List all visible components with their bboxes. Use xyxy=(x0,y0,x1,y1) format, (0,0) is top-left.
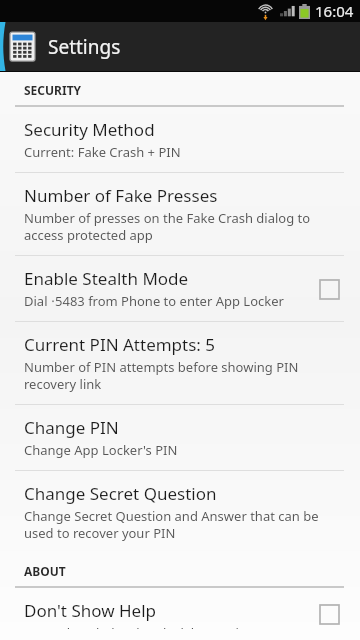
staticText: ABOUT xyxy=(24,563,66,579)
button[interactable]: Number of Fake Presses xyxy=(0,173,360,255)
staticText: Number of PIN attempts before showing PI… xyxy=(24,358,346,393)
staticText: Current PIN Attempts: 5 xyxy=(24,333,216,356)
button[interactable]: Toggle Don't Show Help xyxy=(312,599,346,629)
button[interactable]: Change Secret Question xyxy=(0,471,360,553)
button[interactable]: Security Method xyxy=(0,107,360,172)
staticText: SECURITY xyxy=(24,82,82,98)
button[interactable]: Change PIN xyxy=(0,405,360,470)
staticText: Change Secret Question and Answer that c… xyxy=(24,507,346,542)
button[interactable]: Toggle Enable Stealth Mode xyxy=(312,272,346,306)
staticText: Change App Locker's PIN xyxy=(24,441,178,459)
staticText: Don't Show Help xyxy=(24,599,157,622)
staticText: Change Secret Question xyxy=(24,482,217,505)
button[interactable]: Current PIN Attempts: 5 xyxy=(0,322,360,404)
staticText: Security Method xyxy=(24,118,155,141)
button[interactable]: Don't Show Help xyxy=(0,588,360,640)
staticText: Don’t Show help when lock button is pres… xyxy=(24,624,300,629)
staticText: Enable Stealth Mode xyxy=(24,267,189,290)
staticText: Change PIN xyxy=(24,416,119,439)
staticText: 16:04 xyxy=(315,1,354,21)
staticText: Current: Fake Crash + PIN xyxy=(24,143,181,161)
staticText: Number of presses on the Fake Crash dial… xyxy=(24,209,346,244)
staticText: Dial ⋅5483 from Phone to enter App Locke… xyxy=(24,292,284,310)
button[interactable]: Enable Stealth Mode xyxy=(0,256,360,321)
staticText: Settings xyxy=(48,34,121,60)
staticText: Number of Fake Presses xyxy=(24,184,218,207)
